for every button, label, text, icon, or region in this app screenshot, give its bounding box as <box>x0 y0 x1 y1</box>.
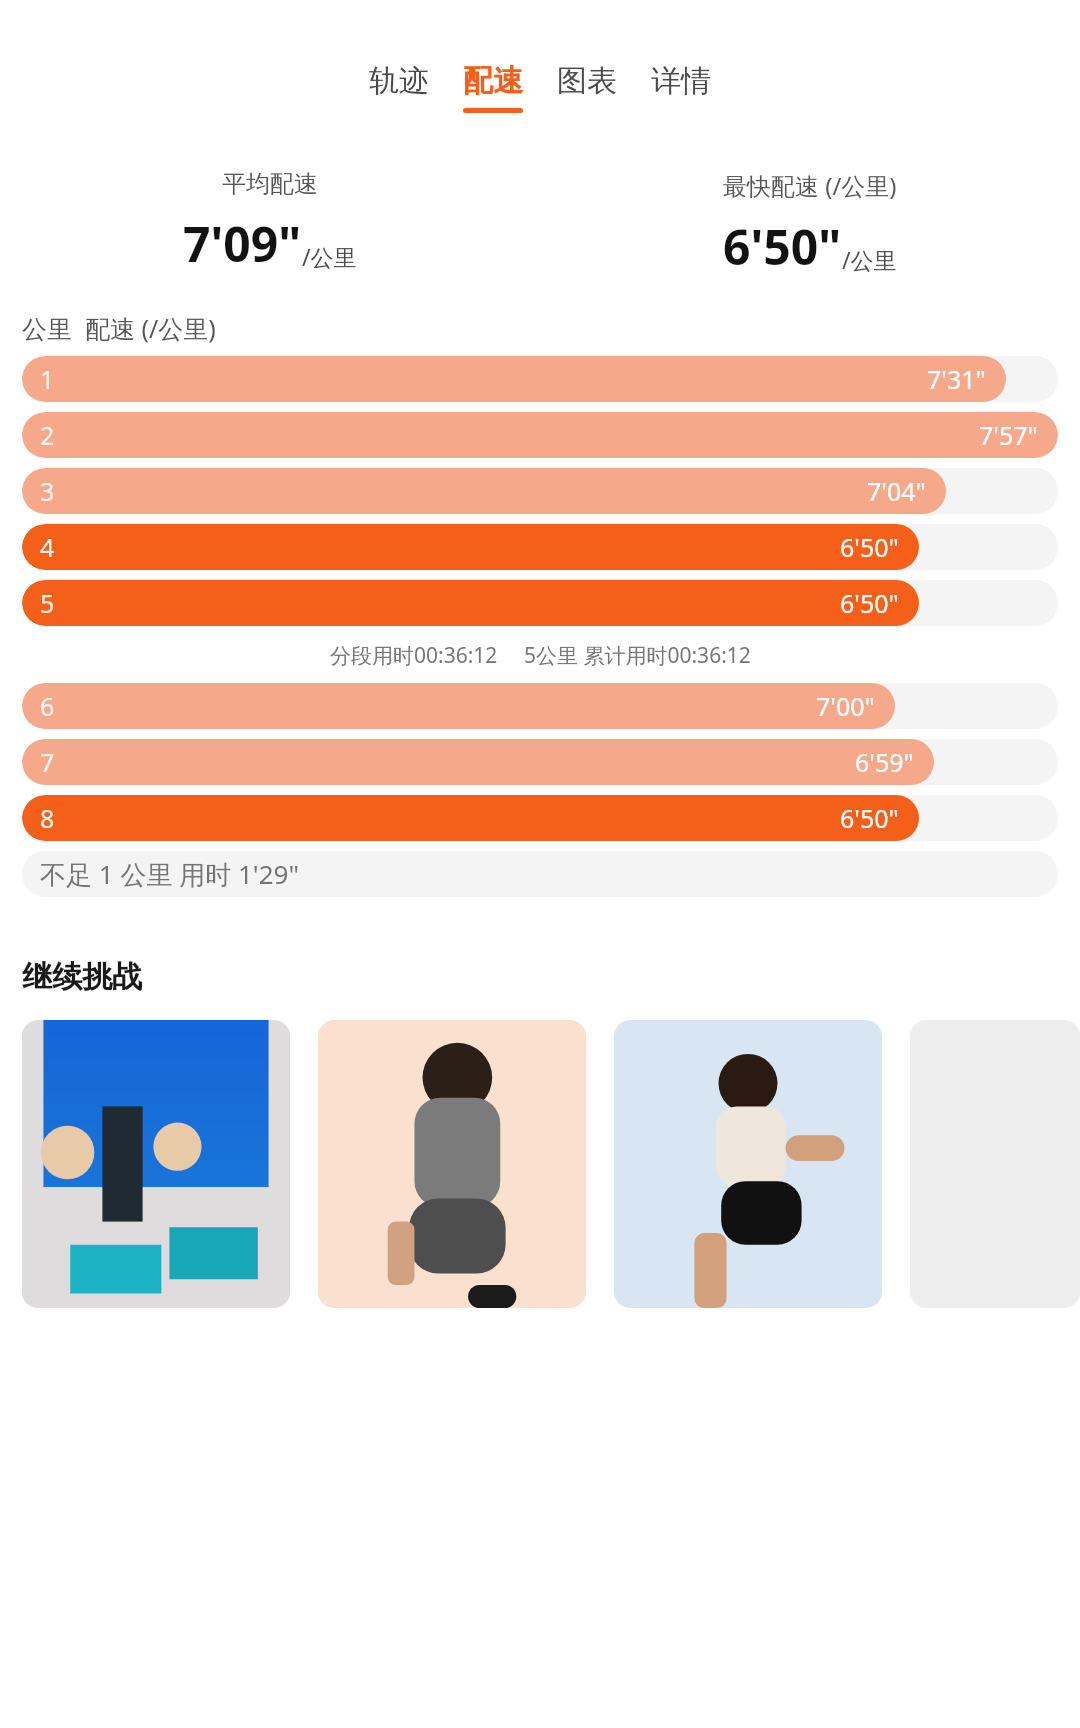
button[interactable]: 配速 <box>451 58 535 117</box>
staticText: /公里 <box>842 244 897 275</box>
staticText: 7'09" <box>183 211 302 276</box>
staticText: 6'50" <box>840 801 899 835</box>
staticText: 1 <box>40 362 55 396</box>
button[interactable]: Challenge card <box>318 1020 586 1308</box>
staticText: 7'00" <box>816 689 875 723</box>
staticText: 6'50" <box>840 530 899 564</box>
button[interactable]: 2 <box>22 412 1058 458</box>
staticText: 分段用时00:36:12 <box>330 641 498 670</box>
staticText: 5公里 累计用时00:36:12 <box>524 641 751 670</box>
staticText: 2 <box>40 418 55 452</box>
staticText: 7'57" <box>979 418 1038 452</box>
staticText: 最快配速 (/公里) <box>723 169 897 202</box>
staticText: 6'59" <box>855 745 914 779</box>
staticText: 配速 <box>463 62 523 100</box>
button[interactable]: 1 <box>22 356 1058 402</box>
button[interactable]: 不足 1 公里 用时 1'29" <box>22 851 1058 897</box>
button[interactable]: 5 <box>22 580 1058 626</box>
button[interactable]: 6 <box>22 683 1058 729</box>
staticText: 6 <box>40 689 55 723</box>
staticText: 3 <box>40 474 55 508</box>
staticText: 7 <box>40 745 55 779</box>
button[interactable]: 8 <box>22 795 1058 841</box>
staticText: 公里 配速 (/公里) <box>22 311 216 345</box>
button[interactable]: 详情 <box>639 58 723 117</box>
button[interactable]: 轨迹 <box>357 58 441 117</box>
button[interactable]: 4 <box>22 524 1058 570</box>
staticText: 8 <box>40 801 55 835</box>
staticText: 详情 <box>651 62 711 100</box>
staticText: 5 <box>40 586 55 620</box>
staticText: 7'31" <box>927 362 986 396</box>
staticText: 继续挑战 <box>22 958 142 996</box>
staticText: 7'04" <box>867 474 926 508</box>
button[interactable]: 7 <box>22 739 1058 785</box>
staticText: 轨迹 <box>369 62 429 100</box>
button[interactable]: 图表 <box>545 58 629 117</box>
staticText: 不足 1 公里 用时 1'29" <box>40 856 299 892</box>
staticText: 4 <box>40 530 55 564</box>
staticText: 平均配速 <box>222 169 318 199</box>
button[interactable]: 3 <box>22 468 1058 514</box>
button[interactable]: Challenge card <box>22 1020 290 1308</box>
staticText: 图表 <box>557 62 617 100</box>
staticText: 6'50" <box>723 214 842 279</box>
staticText: 6'50" <box>840 586 899 620</box>
staticText: /公里 <box>302 241 357 272</box>
button[interactable]: Challenge card <box>614 1020 882 1308</box>
